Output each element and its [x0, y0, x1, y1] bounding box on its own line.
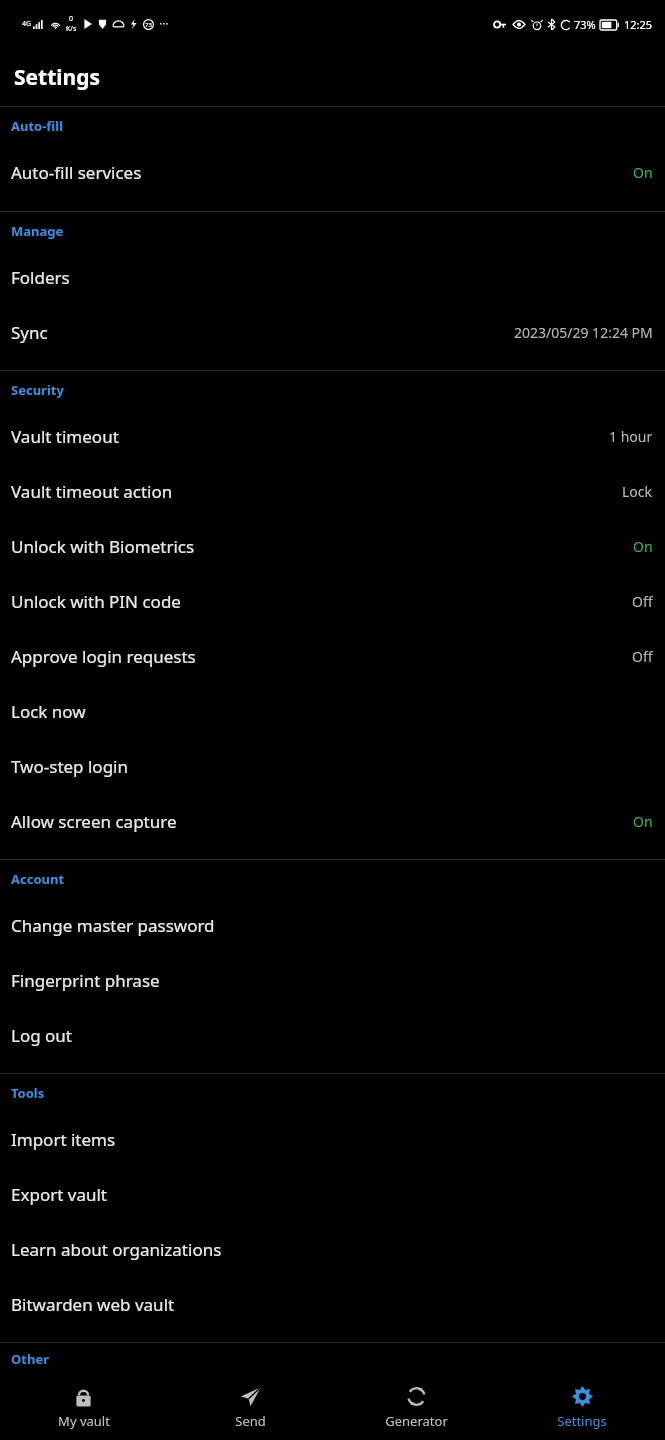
staticText: Log out	[11, 1024, 653, 1047]
staticText: K/s	[66, 24, 77, 34]
button[interactable]: Log out	[0, 1008, 665, 1063]
button[interactable]: Lock now	[0, 684, 665, 739]
staticText: Lock now	[11, 700, 653, 723]
button[interactable]: Auto-fill services	[0, 145, 665, 200]
staticText: Lock	[622, 482, 653, 501]
staticText: Off	[632, 592, 653, 611]
staticText: Settings	[14, 63, 101, 92]
staticText: 2023/05/29 12:24 PM	[514, 323, 653, 342]
staticText: Generator	[385, 1412, 448, 1430]
staticText: Two-step login	[11, 755, 653, 778]
staticText: Allow screen capture	[11, 810, 625, 833]
staticText: Fingerprint phrase	[11, 969, 653, 992]
button[interactable]: Unlock with PIN code	[0, 574, 665, 629]
button[interactable]: Vault timeout action	[0, 464, 665, 519]
button[interactable]: Fingerprint phrase	[0, 953, 665, 1008]
staticText: Tools	[11, 1084, 45, 1102]
staticText: Other	[11, 1350, 49, 1368]
staticText: 4G	[22, 19, 32, 29]
button[interactable]: Approve login requests	[0, 629, 665, 684]
staticText: On	[633, 163, 653, 182]
staticText: Approve login requests	[11, 645, 624, 668]
staticText: 73	[145, 21, 152, 29]
staticText: Auto-fill	[11, 117, 64, 135]
staticText: 73%	[574, 17, 596, 32]
staticText: Unlock with PIN code	[11, 590, 624, 613]
button[interactable]: Two-step login	[0, 739, 665, 794]
staticText: On	[633, 537, 653, 556]
staticText: Vault timeout	[11, 425, 601, 448]
staticText: Change master password	[11, 914, 653, 937]
button[interactable]: Settings	[499, 1375, 665, 1440]
staticText: Unlock with Biometrics	[11, 535, 625, 558]
staticText: My vault	[58, 1412, 110, 1430]
staticText: Import items	[11, 1128, 653, 1151]
button[interactable]: Send	[167, 1375, 333, 1440]
staticText: Manage	[11, 222, 64, 240]
button[interactable]: My vault	[0, 1375, 167, 1440]
staticText: Export vault	[11, 1183, 653, 1206]
button[interactable]: Change master password	[0, 898, 665, 953]
staticText: 1 hour	[609, 427, 653, 446]
button[interactable]: Unlock with Biometrics	[0, 519, 665, 574]
staticText: Off	[632, 647, 653, 666]
button[interactable]: Export vault	[0, 1167, 665, 1222]
button[interactable]: Sync	[0, 305, 665, 360]
staticText: Auto-fill services	[11, 161, 625, 184]
staticText: 12:25	[624, 17, 653, 32]
staticText: 0	[69, 14, 74, 24]
staticText: Sync	[11, 321, 506, 344]
staticText: ⋯	[159, 18, 169, 30]
staticText: Security	[11, 381, 64, 399]
button[interactable]: Learn about organizations	[0, 1222, 665, 1277]
staticText: Folders	[11, 266, 653, 289]
staticText: Account	[11, 870, 65, 888]
button[interactable]: Vault timeout	[0, 409, 665, 464]
button[interactable]: Folders	[0, 250, 665, 305]
button[interactable]: Allow screen capture	[0, 794, 665, 849]
button[interactable]: Import items	[0, 1112, 665, 1167]
staticText: Learn about organizations	[11, 1238, 653, 1261]
staticText: On	[633, 812, 653, 831]
staticText: Vault timeout action	[11, 480, 614, 503]
staticText: Settings	[557, 1412, 607, 1430]
button[interactable]: Generator	[333, 1375, 499, 1440]
staticText: Send	[235, 1412, 266, 1430]
staticText: Bitwarden web vault	[11, 1293, 653, 1316]
button[interactable]: Bitwarden web vault	[0, 1277, 665, 1332]
